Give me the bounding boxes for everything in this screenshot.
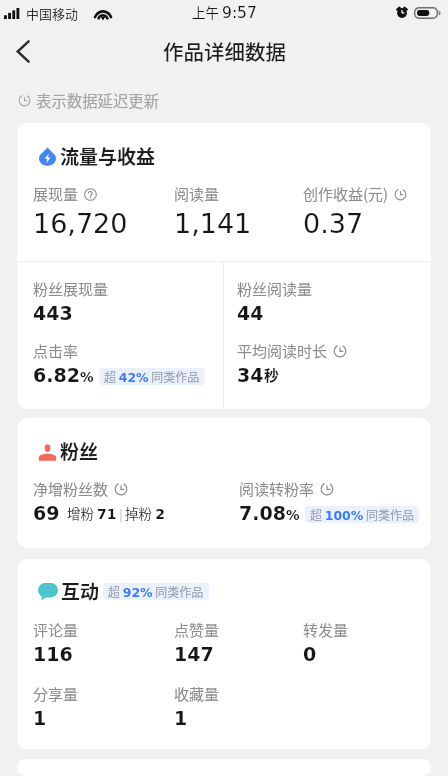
staticText: 超 42% 同类作品 (104, 368, 200, 385)
staticText: 展现量 (33, 183, 79, 205)
staticText: 超 100% 同类作品 (310, 506, 414, 523)
staticText: 转发量 (303, 619, 349, 641)
staticText: 44 (237, 302, 264, 324)
staticText: 1,141 (174, 208, 252, 239)
staticText: 平均阅读时长 (237, 340, 328, 362)
staticText: % (80, 369, 94, 385)
staticText: 分享量 (33, 683, 79, 705)
staticText: 评论量 (33, 619, 79, 641)
staticText: 作品详细数据 (163, 36, 286, 66)
staticText: 点击率 (33, 340, 79, 362)
staticText: 秒 (264, 364, 279, 385)
staticText: 16,720 (33, 208, 128, 239)
staticText: 粉丝展现量 (33, 278, 109, 300)
staticText: 69 (33, 502, 60, 524)
staticText: 上午 9:57 (192, 2, 257, 22)
staticText: 表示数据延迟更新 (36, 89, 160, 111)
staticText: 流量与收益 (60, 142, 156, 170)
staticText: 443 (33, 302, 73, 324)
staticText: 创作收益(元) (303, 183, 389, 205)
staticText: 147 (174, 643, 214, 665)
staticText: 34 (237, 364, 264, 386)
staticText: 116 (33, 643, 73, 665)
staticText: % (286, 507, 300, 523)
staticText: 1 (33, 707, 47, 729)
staticText: 阅读转粉率 (239, 478, 315, 500)
button[interactable]: Back (1, 29, 45, 73)
staticText: 粉丝阅读量 (237, 278, 313, 300)
staticText: 6.82 (33, 364, 80, 386)
staticText: 增粉 71 | 掉粉 2 (67, 503, 165, 523)
staticText: 7.08 (239, 502, 286, 524)
staticText: 0 (303, 643, 317, 665)
staticText: 1 (174, 707, 188, 729)
staticText: 收藏量 (174, 683, 220, 705)
staticText: 净增粉丝数 (33, 478, 109, 500)
staticText: 互动 (61, 577, 100, 605)
staticText: 0.37 (303, 208, 364, 239)
staticText: 中国移动 (26, 4, 79, 23)
staticText: 粉丝 (60, 437, 99, 465)
staticText: 超 92% 同类作品 (108, 583, 204, 600)
staticText: 阅读量 (174, 183, 220, 205)
staticText: 点赞量 (174, 619, 220, 641)
